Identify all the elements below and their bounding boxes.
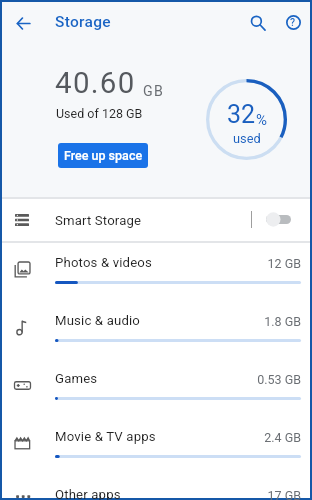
staticText: 12 GB	[2, 256, 301, 271]
staticText: GB	[143, 83, 165, 100]
staticText: 1.8 GB	[2, 314, 301, 329]
staticText: Movie & TV apps	[55, 429, 156, 444]
staticText: Used of 128 GB	[56, 106, 143, 121]
staticText: used	[233, 131, 261, 146]
button[interactable]: Other apps	[2, 474, 310, 500]
staticText: Free up space	[64, 148, 143, 163]
staticText: 40.60	[55, 66, 136, 101]
staticText: ?	[290, 16, 296, 28]
button[interactable]: Photos & videos	[2, 242, 310, 300]
staticText: %	[256, 111, 267, 129]
button[interactable]: Smart Storage toggle	[260, 205, 306, 235]
staticText: Photos & videos	[55, 255, 152, 270]
button[interactable]: Search	[244, 9, 272, 37]
staticText: Music & audio	[55, 313, 141, 328]
staticText: Games	[55, 371, 98, 386]
staticText: 0.53 GB	[2, 372, 301, 387]
button[interactable]: Storage	[42, 2, 98, 45]
staticText: Smart Storage	[55, 213, 142, 228]
button[interactable]: Smart Storage	[2, 199, 310, 241]
staticText: 17 GB	[2, 488, 301, 500]
button[interactable]: Back	[9, 9, 37, 37]
staticText: Storage	[55, 13, 111, 31]
button[interactable]: Movie & TV apps	[2, 416, 310, 474]
button[interactable]: Free up space	[58, 143, 148, 168]
staticText: 2.4 GB	[2, 430, 301, 445]
button[interactable]: Music & audio	[2, 300, 310, 358]
staticText: 32	[227, 100, 256, 129]
staticText: Other apps	[55, 487, 121, 500]
button[interactable]: Games	[2, 358, 310, 416]
button[interactable]: Help	[279, 8, 307, 36]
